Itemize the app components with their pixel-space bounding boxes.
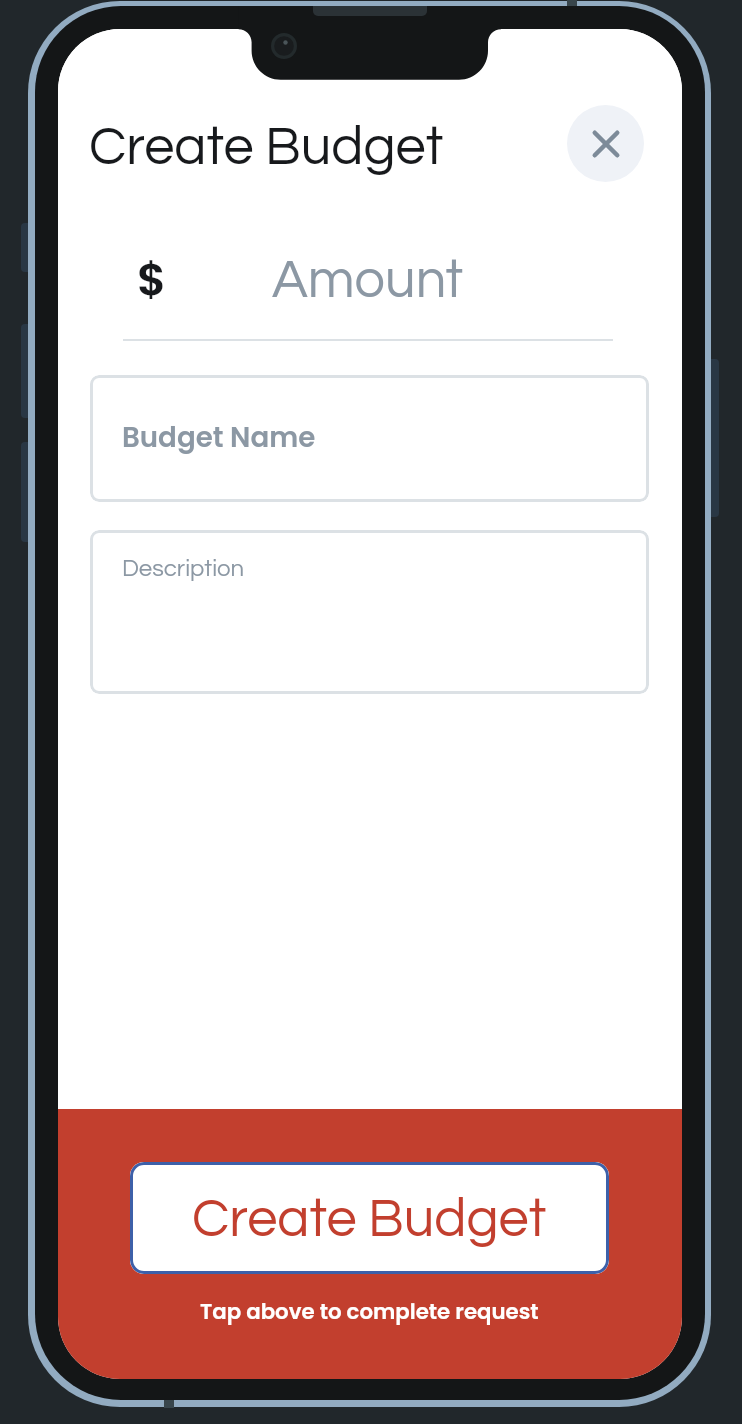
button[interactable]: Budget Name [90,375,649,502]
staticText: Tap above to complete request [200,1297,539,1327]
staticText: Amount [272,253,464,309]
staticText: Budget Name [122,418,316,457]
staticText: Description [122,556,245,581]
staticText: $ [137,248,167,311]
button[interactable]: Create Budget [130,1162,609,1274]
button[interactable]: Description [90,530,649,694]
staticText: Create Budget [192,1192,547,1248]
staticText: Create Budget [89,120,444,176]
button[interactable]: Close [567,105,644,182]
